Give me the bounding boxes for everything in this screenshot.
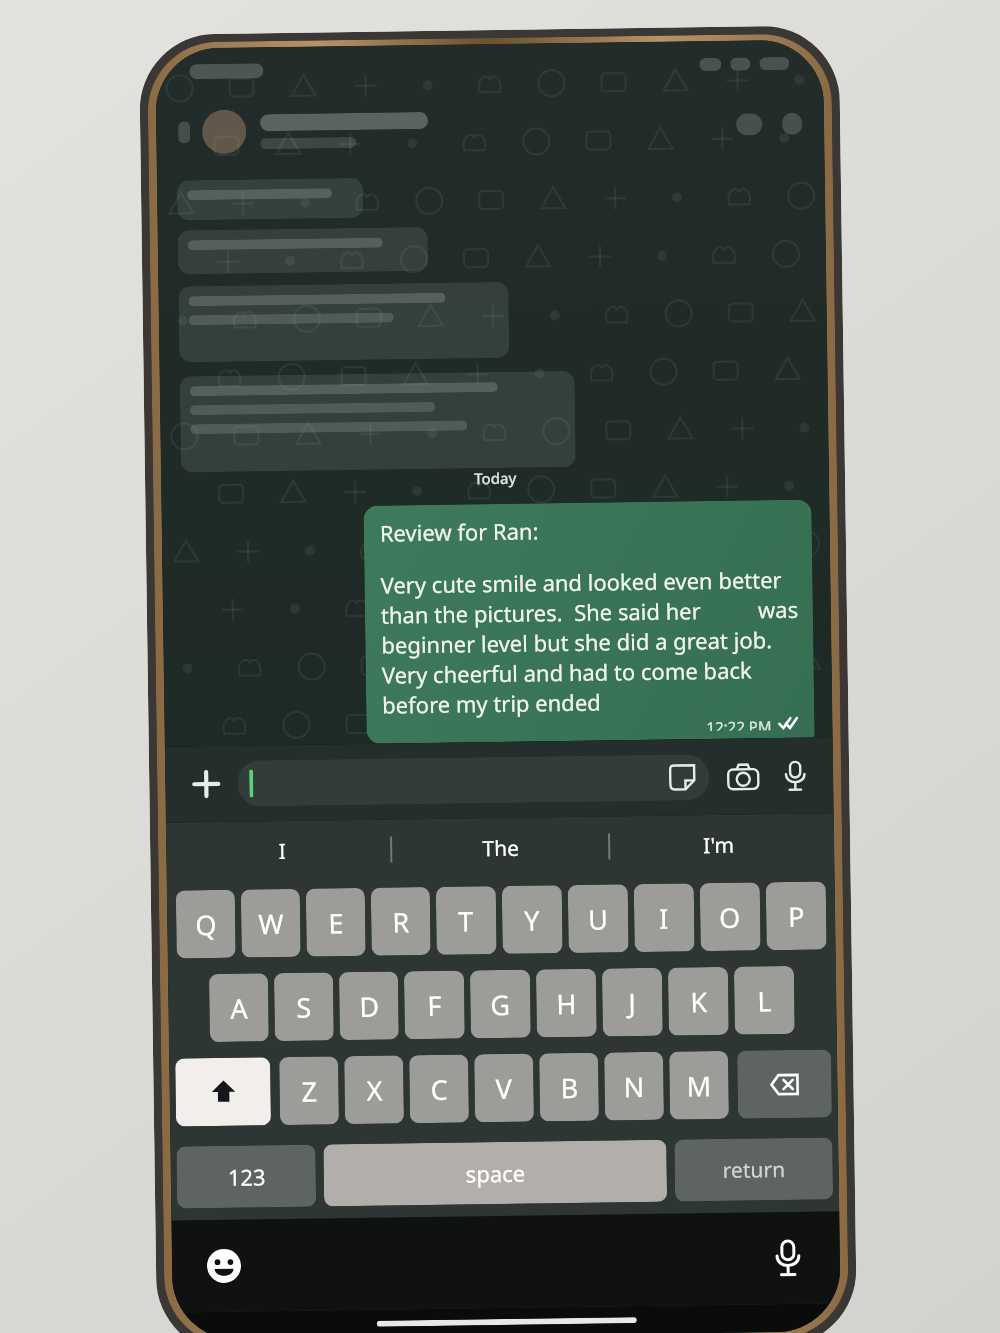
staticText: A	[230, 989, 249, 1027]
staticText: The	[482, 834, 519, 863]
button[interactable]: The	[392, 816, 609, 879]
button[interactable]: N	[604, 1052, 664, 1120]
button[interactable]: space	[323, 1140, 667, 1206]
staticText: I	[659, 900, 669, 937]
button[interactable]: Y	[502, 885, 563, 954]
staticText: Very cute smile and looked even better t…	[380, 564, 800, 720]
button[interactable]: Review for Ran:	[363, 500, 815, 744]
button[interactable]: Attach	[181, 759, 232, 809]
button[interactable]: Dictation	[762, 1232, 814, 1284]
button[interactable]: Emoji	[198, 1239, 250, 1292]
button[interactable]: W	[241, 889, 301, 958]
staticText: F	[427, 987, 443, 1024]
staticText: I'm	[703, 831, 734, 860]
button[interactable]: J	[602, 968, 663, 1036]
staticText: B	[560, 1069, 579, 1106]
button[interactable]: Stickers	[237, 754, 710, 807]
button[interactable]: return	[674, 1137, 833, 1202]
button[interactable]: K	[668, 967, 729, 1036]
button[interactable]: Shift	[175, 1057, 271, 1126]
button[interactable]: Backspace	[737, 1049, 832, 1119]
button[interactable]: Voice message	[773, 754, 817, 798]
staticText: E	[328, 904, 344, 941]
button[interactable]: I	[174, 819, 391, 882]
staticText: G	[490, 986, 511, 1023]
button[interactable]: A	[209, 973, 269, 1042]
staticText: M	[686, 1067, 712, 1104]
staticText: Today	[474, 468, 517, 488]
staticText: H	[556, 985, 578, 1022]
staticText: X	[366, 1072, 383, 1109]
button[interactable]: M	[669, 1051, 729, 1120]
button[interactable]: Q	[176, 890, 236, 958]
staticText: T	[458, 902, 474, 940]
button[interactable]: D	[339, 971, 399, 1040]
staticText: C	[430, 1071, 449, 1108]
staticText: Review for Ran:	[380, 515, 539, 548]
staticText: return	[722, 1155, 786, 1185]
button[interactable]: S	[274, 972, 334, 1041]
button[interactable]: P	[766, 881, 827, 950]
staticText: R	[392, 903, 409, 940]
staticText: D	[359, 988, 380, 1025]
button[interactable]: L	[734, 966, 795, 1035]
staticText: L	[757, 982, 773, 1019]
button[interactable]: 123	[176, 1145, 316, 1208]
button[interactable]: I	[634, 883, 695, 952]
staticText: 123	[228, 1161, 266, 1192]
staticText: I	[278, 837, 286, 866]
staticText: N	[623, 1068, 645, 1105]
button[interactable]: R	[371, 887, 431, 956]
button[interactable]: T	[436, 886, 497, 955]
staticText: P	[788, 898, 805, 935]
staticText: 12:22 PM	[706, 716, 772, 731]
button[interactable]: U	[568, 884, 629, 953]
button[interactable]: G	[470, 970, 531, 1038]
button[interactable]: Stickers	[667, 762, 697, 793]
button[interactable]: Z	[279, 1056, 339, 1125]
button[interactable]: E	[306, 888, 366, 957]
staticText: K	[690, 983, 708, 1020]
button[interactable]: O	[700, 882, 761, 951]
button[interactable]: B	[539, 1053, 599, 1121]
staticText: W	[258, 905, 284, 942]
button[interactable]: F	[404, 970, 465, 1039]
button[interactable]: H	[536, 969, 597, 1037]
button[interactable]: V	[474, 1053, 534, 1122]
staticText: Z	[301, 1073, 318, 1110]
staticText: V	[495, 1070, 513, 1107]
staticText: U	[588, 900, 608, 938]
button[interactable]: Camera	[721, 754, 765, 799]
button[interactable]: C	[409, 1054, 469, 1123]
staticText: space	[465, 1158, 526, 1188]
staticText: S	[296, 989, 312, 1026]
staticText: J	[628, 984, 637, 1021]
staticText: O	[719, 899, 741, 936]
staticText: Y	[524, 901, 540, 939]
button[interactable]: I'm	[610, 813, 827, 876]
staticText: Q	[195, 906, 217, 943]
button[interactable]: X	[344, 1055, 404, 1124]
